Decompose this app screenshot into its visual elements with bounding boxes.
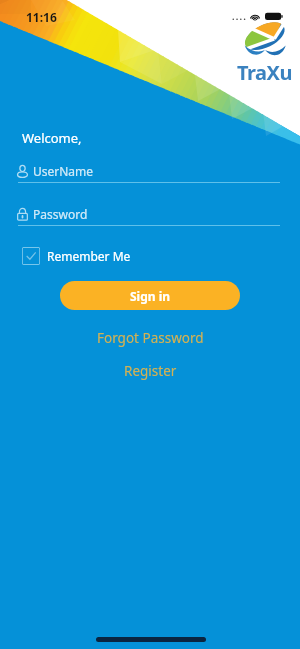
staticText: Remember Me <box>47 248 131 264</box>
staticText: Sign in <box>130 288 171 304</box>
staticText: Register <box>124 362 177 380</box>
staticText: Forgot Password <box>97 329 204 347</box>
button[interactable]: Register <box>118 359 183 383</box>
staticText: Password <box>33 206 88 222</box>
button[interactable]: Remember Me <box>22 247 131 265</box>
staticText: UserName <box>33 163 94 179</box>
staticText: TraXu <box>237 59 292 86</box>
button[interactable]: Forgot Password <box>91 326 210 350</box>
staticText: Welcome, <box>22 129 82 147</box>
staticText: 11:16 <box>26 9 57 25</box>
button[interactable]: Sign in <box>60 281 240 310</box>
